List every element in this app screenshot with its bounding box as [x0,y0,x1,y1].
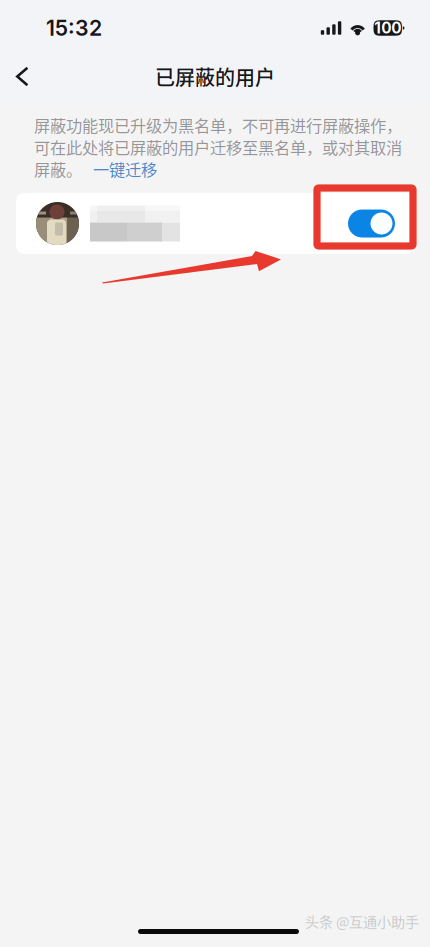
staticText: 屏蔽功能现已升级为黑名单，不可再进行屏蔽操作， [34,113,402,137]
staticText: 可在此处将已屏蔽的用户迁移至黑名单，或对其取消 [34,135,402,159]
staticText: 15:32 [46,15,102,41]
button[interactable] [0,193,430,254]
staticText: 已屏蔽的用户 [155,62,275,91]
staticText: 100 [374,19,401,37]
button[interactable]: 一键迁移 [93,157,157,181]
staticText: 一键迁移 [93,157,157,181]
button[interactable]: 返回 [0,51,47,101]
staticText: 头条 @互通小助手 [305,911,419,931]
staticText: 屏蔽。 [34,157,82,181]
